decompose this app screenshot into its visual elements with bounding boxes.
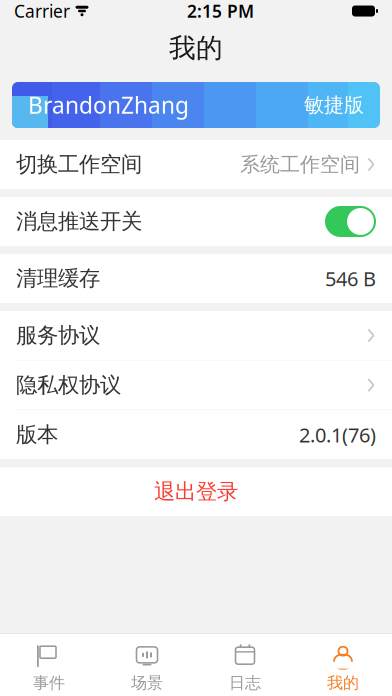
button[interactable]: 事件 bbox=[0, 641, 98, 696]
staticText: 546 B bbox=[325, 265, 376, 292]
staticText: 2:15 PM bbox=[187, 0, 254, 22]
staticText: 系统工作空间 bbox=[240, 152, 360, 177]
staticText: 场景 bbox=[131, 673, 163, 693]
staticText: 隐私权协议 bbox=[16, 372, 121, 398]
staticText: 消息推送开关 bbox=[16, 208, 142, 235]
staticText: Carrier bbox=[14, 0, 70, 22]
staticText: 日志 bbox=[229, 673, 261, 693]
staticText: 服务协议 bbox=[16, 322, 100, 349]
staticText: 2.0.1(76) bbox=[299, 421, 376, 448]
staticText: 清理缓存 bbox=[16, 265, 100, 292]
button[interactable]: BrandonZhang bbox=[12, 82, 380, 128]
staticText: BrandonZhang bbox=[28, 90, 189, 120]
staticText: 退出登录 bbox=[154, 479, 238, 505]
staticText: 事件 bbox=[33, 673, 65, 693]
staticText: 我的 bbox=[327, 673, 359, 693]
button[interactable]: 退出登录 bbox=[0, 467, 392, 516]
staticText: 切换工作空间 bbox=[16, 151, 142, 178]
staticText: 我的 bbox=[169, 32, 223, 64]
button[interactable]: 服务协议 bbox=[0, 311, 392, 360]
button[interactable]: 消息推送开关 bbox=[325, 206, 376, 237]
button[interactable]: 场景 bbox=[98, 641, 196, 696]
button[interactable]: 我的 bbox=[294, 641, 392, 696]
button[interactable]: 切换工作空间 bbox=[0, 140, 392, 189]
staticText: 版本 bbox=[16, 422, 58, 448]
button[interactable]: 隐私权协议 bbox=[0, 361, 392, 410]
staticText: 敏捷版 bbox=[304, 93, 364, 117]
button[interactable]: 日志 bbox=[196, 641, 294, 696]
